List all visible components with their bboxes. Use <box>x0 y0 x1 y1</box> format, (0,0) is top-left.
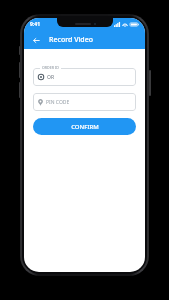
staticText: PIN CODE <box>46 99 70 106</box>
staticText: OR <box>47 74 55 81</box>
staticText: Record Video <box>49 35 93 45</box>
button[interactable]: OR <box>33 68 136 86</box>
staticText: CONFIRM <box>71 123 99 131</box>
staticText: 9:41 <box>30 21 40 28</box>
button[interactable]: PIN CODE <box>33 93 136 111</box>
button[interactable]: CONFIRM <box>33 118 136 135</box>
button[interactable]: Back <box>29 33 43 47</box>
staticText: ORDER ID <box>42 65 59 70</box>
